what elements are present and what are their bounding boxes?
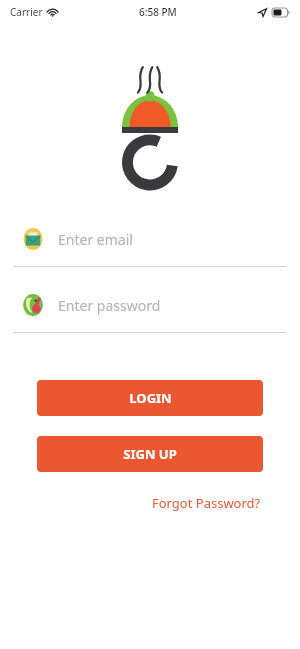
other: Email [22,228,44,250]
staticText: Carrier [10,5,43,19]
button[interactable]: LOGIN [37,380,263,416]
button[interactable]: Password [0,288,300,322]
button[interactable]: Email [0,222,300,256]
staticText: SIGN UP [123,445,177,463]
staticText: Forgot Password? [152,494,261,512]
button[interactable]: SIGN UP [37,436,263,472]
button[interactable]: Forgot Password? [150,492,263,514]
other: Password [22,294,44,316]
other: App logo [122,62,178,177]
staticText: LOGIN [129,389,172,407]
staticText: Enter password [58,296,161,315]
staticText: 6:58 PM [139,5,177,19]
staticText: Enter email [58,230,133,249]
